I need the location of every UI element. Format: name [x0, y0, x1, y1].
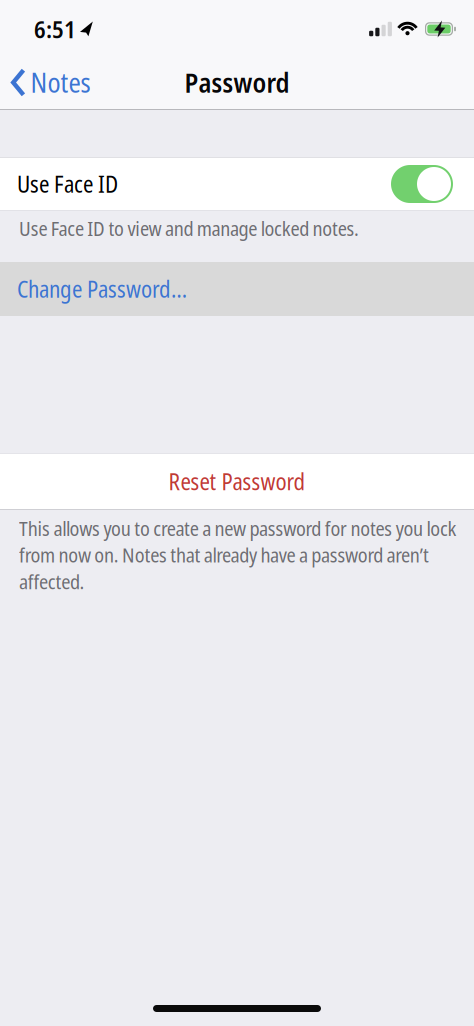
button[interactable]: Reset Password	[0, 454, 474, 509]
staticText: Password	[184, 65, 289, 100]
staticText: 6:51	[34, 13, 76, 45]
button[interactable]: Change Password…	[0, 262, 474, 316]
staticText: Reset Password	[168, 466, 305, 496]
staticText: Use Face ID	[17, 169, 118, 199]
staticText: Change Password…	[17, 274, 187, 304]
button[interactable]: Back to Notes	[11, 65, 90, 100]
staticText: Use Face ID to view and manage locked no…	[19, 215, 359, 242]
staticText: This allows you to create a new password…	[19, 515, 457, 595]
staticText: Notes	[30, 65, 90, 100]
button[interactable]: Use Face ID	[0, 158, 474, 210]
